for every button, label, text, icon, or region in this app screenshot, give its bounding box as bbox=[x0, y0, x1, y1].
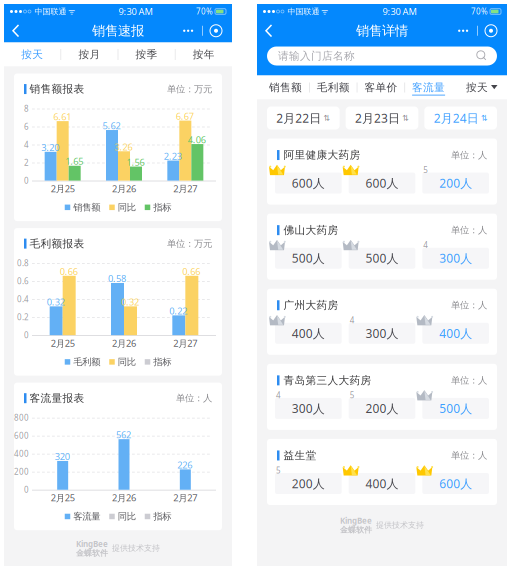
staticText: 指标 bbox=[153, 202, 171, 213]
staticText: 佛山大药房 bbox=[283, 224, 338, 237]
button[interactable]: Close bbox=[208, 22, 224, 40]
staticText: 0 bbox=[24, 330, 29, 340]
staticText: 指标 bbox=[153, 356, 171, 368]
staticText: 毛利额 bbox=[317, 81, 350, 94]
staticText: 4 bbox=[423, 240, 428, 250]
staticText: 4.06 bbox=[188, 133, 206, 146]
staticText: 客单价 bbox=[364, 81, 397, 94]
staticText: 2月27 bbox=[173, 337, 197, 349]
staticText: 金蝶软件 bbox=[76, 548, 108, 558]
staticText: 毛利额报表 bbox=[29, 237, 84, 250]
button[interactable]: 客单价 bbox=[357, 75, 404, 99]
staticText: 2月26 bbox=[112, 337, 136, 349]
staticText: 客流量报表 bbox=[29, 392, 84, 405]
staticText: 500人 bbox=[365, 250, 398, 266]
staticText: 200人 bbox=[292, 475, 325, 491]
staticText: 500人 bbox=[292, 250, 325, 266]
staticText: 请输入门店名称 bbox=[278, 49, 355, 62]
staticText: ᯤ bbox=[68, 6, 75, 17]
staticText: 4 bbox=[276, 390, 281, 400]
button[interactable]: Back bbox=[257, 19, 281, 43]
button[interactable]: 按年 bbox=[175, 42, 232, 66]
staticText: 0.66 bbox=[60, 265, 78, 277]
staticText: 3.20 bbox=[41, 141, 59, 153]
staticText: 5 bbox=[350, 390, 355, 400]
staticText: 销售详情 bbox=[356, 23, 408, 39]
button[interactable]: More bbox=[454, 24, 472, 38]
staticText: 0.8 bbox=[17, 258, 29, 268]
staticText: 600人 bbox=[365, 175, 398, 191]
staticText: 客流量 bbox=[73, 511, 100, 522]
staticText: 提供技术支持 bbox=[376, 520, 424, 530]
staticText: 300人 bbox=[365, 325, 398, 341]
staticText: 按季 bbox=[136, 48, 158, 61]
staticText: 5 bbox=[423, 165, 428, 175]
staticText: 1.65 bbox=[65, 155, 83, 167]
staticText: 按天 bbox=[466, 81, 488, 94]
staticText: 提供技术支持 bbox=[112, 543, 160, 553]
button[interactable]: 按天 bbox=[460, 75, 502, 99]
staticText: 2.23 bbox=[164, 150, 182, 162]
staticText: 4 bbox=[24, 139, 29, 150]
staticText: 600人 bbox=[439, 475, 472, 491]
button[interactable]: Back bbox=[4, 19, 28, 43]
button[interactable]: 按月 bbox=[61, 42, 118, 66]
button[interactable]: 销售额 bbox=[262, 75, 309, 99]
staticText: 400人 bbox=[365, 475, 398, 491]
button[interactable]: 2月24日 bbox=[424, 106, 497, 129]
staticText: 2 bbox=[24, 157, 29, 168]
staticText: 3.26 bbox=[114, 141, 132, 153]
staticText: 毛利额 bbox=[73, 356, 100, 368]
staticText: 单位：万元 bbox=[167, 83, 212, 95]
staticText: 阿里健康大药房 bbox=[283, 148, 360, 162]
staticText: 金蝶软件 bbox=[340, 525, 372, 535]
staticText: 562 bbox=[116, 428, 131, 441]
staticText: KingBee bbox=[340, 515, 372, 526]
staticText: 400 bbox=[14, 448, 29, 459]
staticText: 0.66 bbox=[182, 265, 200, 277]
staticText: 2月25 bbox=[51, 337, 75, 349]
staticText: 中国联通 bbox=[287, 7, 319, 16]
staticText: 2月26 bbox=[112, 491, 136, 504]
staticText: 按天 bbox=[21, 48, 43, 61]
button[interactable]: 按季 bbox=[118, 42, 175, 66]
button[interactable]: More bbox=[179, 24, 197, 38]
staticText: 单位：人 bbox=[451, 299, 487, 311]
staticText: 226 bbox=[177, 459, 192, 471]
staticText: ⇅ bbox=[402, 113, 409, 123]
button[interactable]: 按天 bbox=[4, 42, 60, 66]
staticText: 0.22 bbox=[169, 305, 187, 317]
staticText: 400人 bbox=[292, 325, 325, 341]
staticText: 200人 bbox=[439, 175, 472, 191]
staticText: 同比 bbox=[118, 356, 136, 368]
staticText: 6.61 bbox=[53, 110, 71, 123]
staticText: 销售额 bbox=[73, 202, 100, 213]
button[interactable]: 2月22日 bbox=[267, 106, 340, 129]
button[interactable]: 客流量 bbox=[405, 75, 452, 99]
staticText: 600人 bbox=[292, 175, 325, 191]
staticText: 销售额报表 bbox=[29, 82, 84, 96]
staticText: 青岛第三人大药房 bbox=[283, 374, 371, 387]
staticText: 320 bbox=[55, 450, 70, 463]
staticText: ⇅ bbox=[481, 113, 488, 123]
staticText: ⇅ bbox=[323, 113, 330, 123]
staticText: 600 bbox=[14, 430, 29, 441]
staticText: 中国联通 bbox=[34, 7, 66, 16]
staticText: 广州大药房 bbox=[283, 299, 338, 312]
staticText: 8 bbox=[24, 103, 29, 114]
button[interactable]: 毛利额 bbox=[310, 75, 357, 99]
staticText: 同比 bbox=[118, 202, 136, 213]
staticText: 5.62 bbox=[102, 119, 120, 132]
staticText: 9:30 AM bbox=[118, 5, 152, 18]
staticText: 单位：人 bbox=[451, 375, 487, 386]
staticText: 5 bbox=[276, 465, 281, 476]
staticText: 2月23日 bbox=[355, 110, 400, 126]
staticText: 2月26 bbox=[112, 182, 136, 195]
staticText: 2月22日 bbox=[276, 110, 321, 126]
button[interactable]: 2月23日 bbox=[346, 106, 418, 129]
staticText: 单位：人 bbox=[176, 392, 212, 404]
staticText: 400人 bbox=[439, 325, 472, 341]
button[interactable]: Close bbox=[483, 22, 499, 40]
staticText: 300人 bbox=[439, 250, 472, 266]
staticText: 300人 bbox=[292, 400, 325, 416]
